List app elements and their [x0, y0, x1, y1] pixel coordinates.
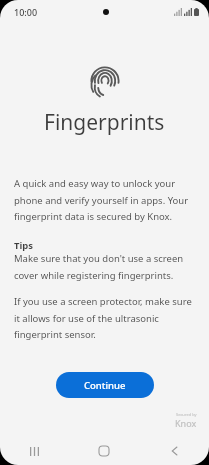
button[interactable]: Back	[139, 437, 209, 465]
staticText: If you use a screen protector, make sure…	[14, 295, 195, 340]
staticText: A quick and easy way to unlock your phon…	[14, 177, 195, 222]
staticText: Secured by	[176, 412, 197, 417]
button[interactable]: Home	[69, 437, 139, 465]
staticText: Make sure that you don't use a screen co…	[14, 252, 195, 281]
button[interactable]: Recent apps	[0, 437, 69, 465]
staticText: Continue	[84, 379, 126, 392]
staticText: Tips	[14, 239, 34, 252]
staticText: Knox	[175, 417, 197, 429]
staticText: Fingerprints	[44, 108, 165, 137]
button[interactable]: Continue	[56, 372, 154, 398]
staticText: 10:00	[14, 6, 38, 18]
